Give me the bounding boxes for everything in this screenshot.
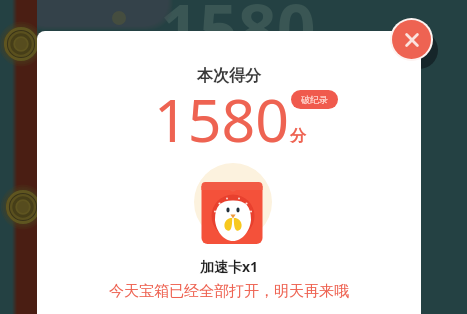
button[interactable]: Close xyxy=(392,20,431,59)
staticText: 加速卡x1 xyxy=(200,257,259,276)
staticText: 分 xyxy=(290,126,306,146)
staticText: 本次得分 xyxy=(197,66,261,86)
staticText: 1580 xyxy=(154,79,289,159)
button[interactable]: 破纪录 xyxy=(291,90,338,109)
staticText: 破纪录 xyxy=(301,94,328,105)
staticText: 今天宝箱已经全部打开，明天再来哦 xyxy=(109,282,349,301)
other: 加速卡 reward xyxy=(193,163,273,243)
button[interactable]: 加速卡 reward xyxy=(189,166,269,276)
staticText: 1580 xyxy=(160,0,316,74)
